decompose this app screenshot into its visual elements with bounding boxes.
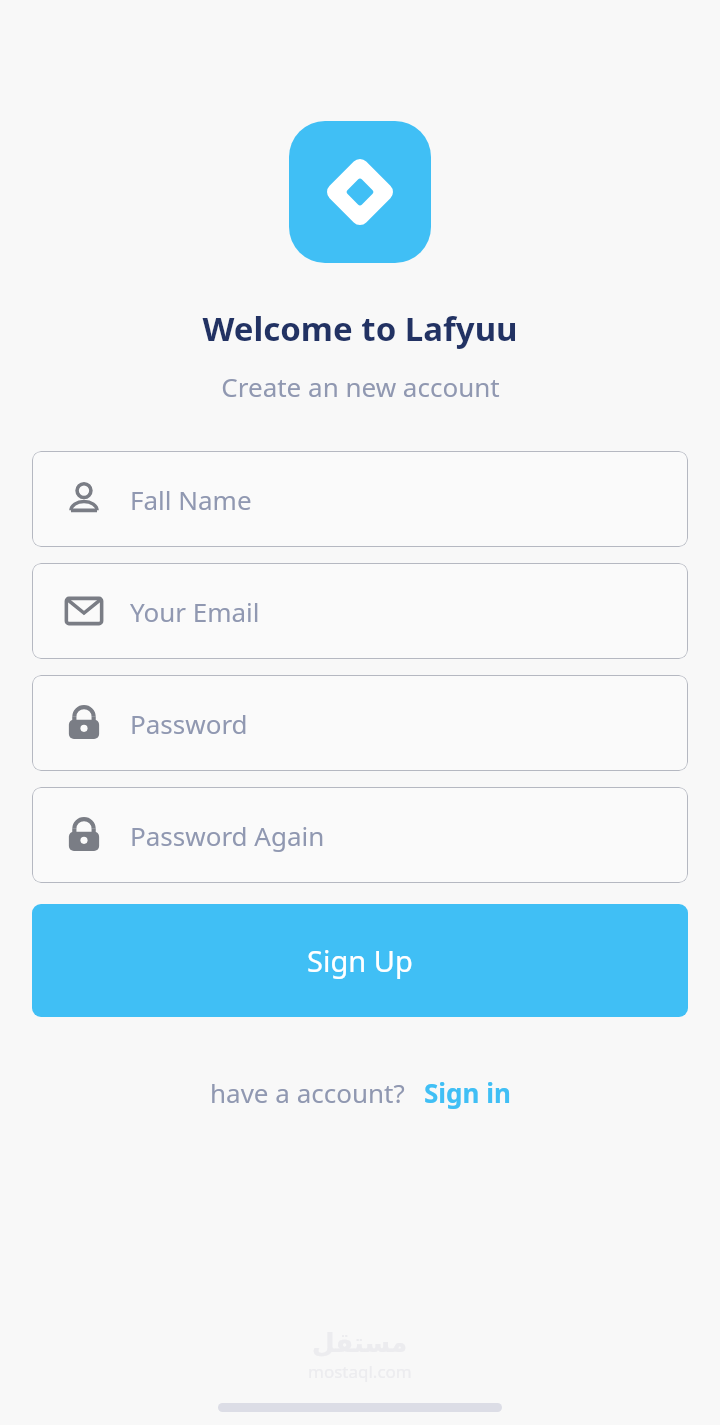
button[interactable]: Sign Up — [32, 904, 688, 1017]
button[interactable]: Password — [32, 675, 688, 771]
button[interactable]: Name — [32, 451, 688, 547]
other: Password — [63, 702, 105, 744]
staticText: مستقل — [312, 1328, 408, 1358]
staticText: Password — [130, 706, 248, 741]
staticText: Sign Up — [307, 941, 413, 980]
staticText: Password Again — [130, 818, 325, 853]
staticText: mostaql.com — [308, 1360, 412, 1383]
staticText: Sign in — [424, 1075, 511, 1110]
button[interactable]: Email — [32, 563, 688, 659]
other: Email — [63, 590, 105, 632]
staticText: Fall Name — [130, 482, 252, 517]
staticText: Create an new account — [221, 369, 500, 404]
other: Name — [63, 478, 105, 520]
staticText: have a account? — [210, 1075, 405, 1110]
other: Password — [63, 814, 105, 856]
button[interactable]: Sign in — [424, 1075, 511, 1110]
staticText: Welcome to Lafyuu — [202, 306, 518, 351]
staticText: Your Email — [130, 594, 260, 629]
button[interactable]: Password — [32, 787, 688, 883]
